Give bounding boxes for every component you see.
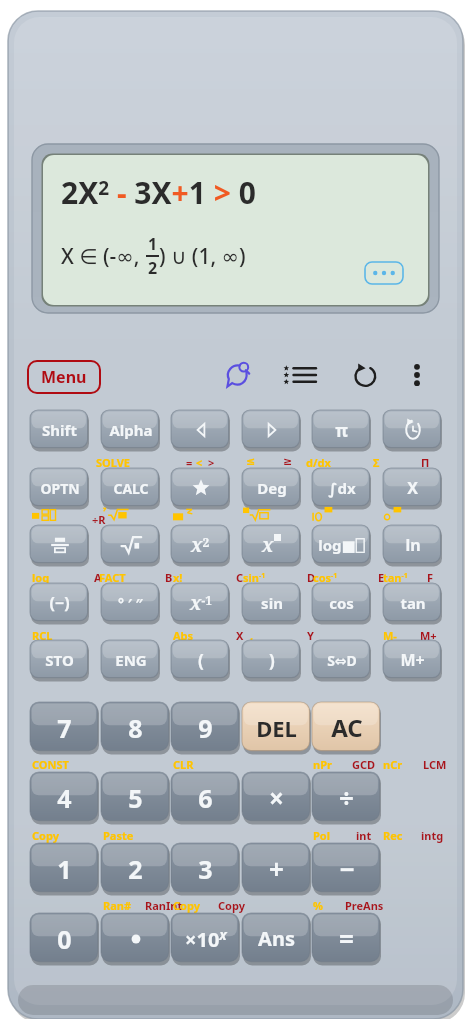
staticText: Abs [173,628,194,643]
staticText: > [208,455,215,470]
button[interactable]: Right [242,410,301,450]
staticText: Shift [42,420,77,440]
button[interactable]: CALC [101,468,160,508]
button[interactable]: ( [171,640,230,680]
staticText: PreAns [345,898,384,913]
staticText: LCM [423,757,447,772]
button[interactable]: 6 [171,772,240,823]
button[interactable]: More options [403,358,431,392]
button[interactable]: 9 [171,702,240,753]
other: Decimal point [119,926,153,952]
button[interactable]: ÷ [312,772,381,823]
staticText: < [196,455,203,470]
staticText: Alpha [109,420,153,440]
button[interactable]: × [242,772,311,823]
button[interactable]: x2 [171,525,230,565]
button[interactable]: = [312,913,381,964]
other: Right [255,417,289,443]
other: History [396,417,430,443]
button[interactable]: STO [30,640,89,680]
button[interactable]: Square root [101,525,160,565]
button[interactable]: Decimal point [101,913,170,964]
button[interactable]: 5 [101,772,170,823]
button[interactable]: ×10x [171,913,240,964]
button[interactable]: Ans [242,913,311,964]
staticText: cos [329,593,354,613]
button[interactable]: ENG [101,640,160,680]
button[interactable]: Deg [242,468,301,508]
staticText: ln [405,534,421,556]
button[interactable]: History [383,410,442,450]
staticText: S⇔D [327,651,357,670]
button[interactable]: − [312,843,381,894]
staticText: ÷R [92,512,106,527]
button[interactable]: Undo [348,358,382,392]
staticText: F [427,570,434,585]
button[interactable]: ln [383,525,442,565]
button[interactable]: Alpha [101,410,160,450]
button[interactable]: More [365,262,403,284]
button[interactable]: Favourites [281,358,319,392]
staticText: nPr [313,757,332,772]
staticText: ≥ [283,455,293,468]
button[interactable]: Search [222,358,256,392]
button[interactable]: Shift [30,410,89,450]
button[interactable]: x-1 [171,583,230,623]
staticText: ×10x [185,925,227,953]
staticText: 0 [57,922,72,956]
button[interactable]: 7 [30,702,99,753]
staticText: A [94,570,102,585]
button[interactable]: cos [312,583,371,623]
button[interactable]: Menu [28,361,100,393]
button[interactable]: OPTN [30,468,89,508]
staticText: x [262,532,274,558]
button[interactable]: Star [171,468,230,508]
staticText: DEL [256,713,297,743]
staticText: log [32,570,50,585]
staticText: X [236,628,244,643]
staticText: ° ′ ″ [118,594,143,613]
staticText: log■⎕ [318,535,365,555]
button[interactable]: x [242,525,301,565]
button[interactable]: + [242,843,311,894]
button[interactable]: X [383,468,442,508]
staticText: OPTN [40,479,80,498]
other: Square root [114,532,148,558]
button[interactable]: ° ′ ″ [101,583,160,623]
staticText: M- [383,628,397,643]
button[interactable]: 2 [101,843,170,894]
button[interactable]: 1 [30,843,99,894]
button[interactable]: ∫dx [312,468,371,508]
staticText: Copy [173,898,200,913]
staticText: Ans [258,925,295,952]
button[interactable]: π [312,410,371,450]
other: Star [184,475,218,501]
button[interactable]: tan [383,583,442,623]
other: Left [184,417,218,443]
staticText: cos-1 [313,570,338,585]
button[interactable]: AC [312,702,381,753]
staticText: ) ∪ (1, ∞) [159,242,246,271]
staticText: B [165,570,173,585]
button[interactable]: Left [171,410,230,450]
button[interactable]: ) [242,640,301,680]
button[interactable]: Fraction [30,525,89,565]
button[interactable]: sin [242,583,301,623]
staticText: d/dx [306,455,331,470]
staticText: RanInt [145,898,183,913]
staticText: STO [45,650,74,670]
button[interactable]: DEL [242,702,311,753]
button[interactable]: 8 [101,702,170,753]
staticText: M+ [400,649,425,671]
button[interactable]: 0 [30,913,99,964]
staticText: = [186,455,193,470]
button[interactable]: 3 [171,843,240,894]
staticText: x2 [191,532,210,558]
button[interactable]: M+ [383,640,442,680]
button[interactable]: log■⎕ [312,525,371,565]
button[interactable]: (−) [30,583,89,623]
button[interactable]: 4 [30,772,99,823]
staticText: RCL [32,628,53,643]
staticText: intg [421,828,444,843]
button[interactable]: S⇔D [312,640,371,680]
